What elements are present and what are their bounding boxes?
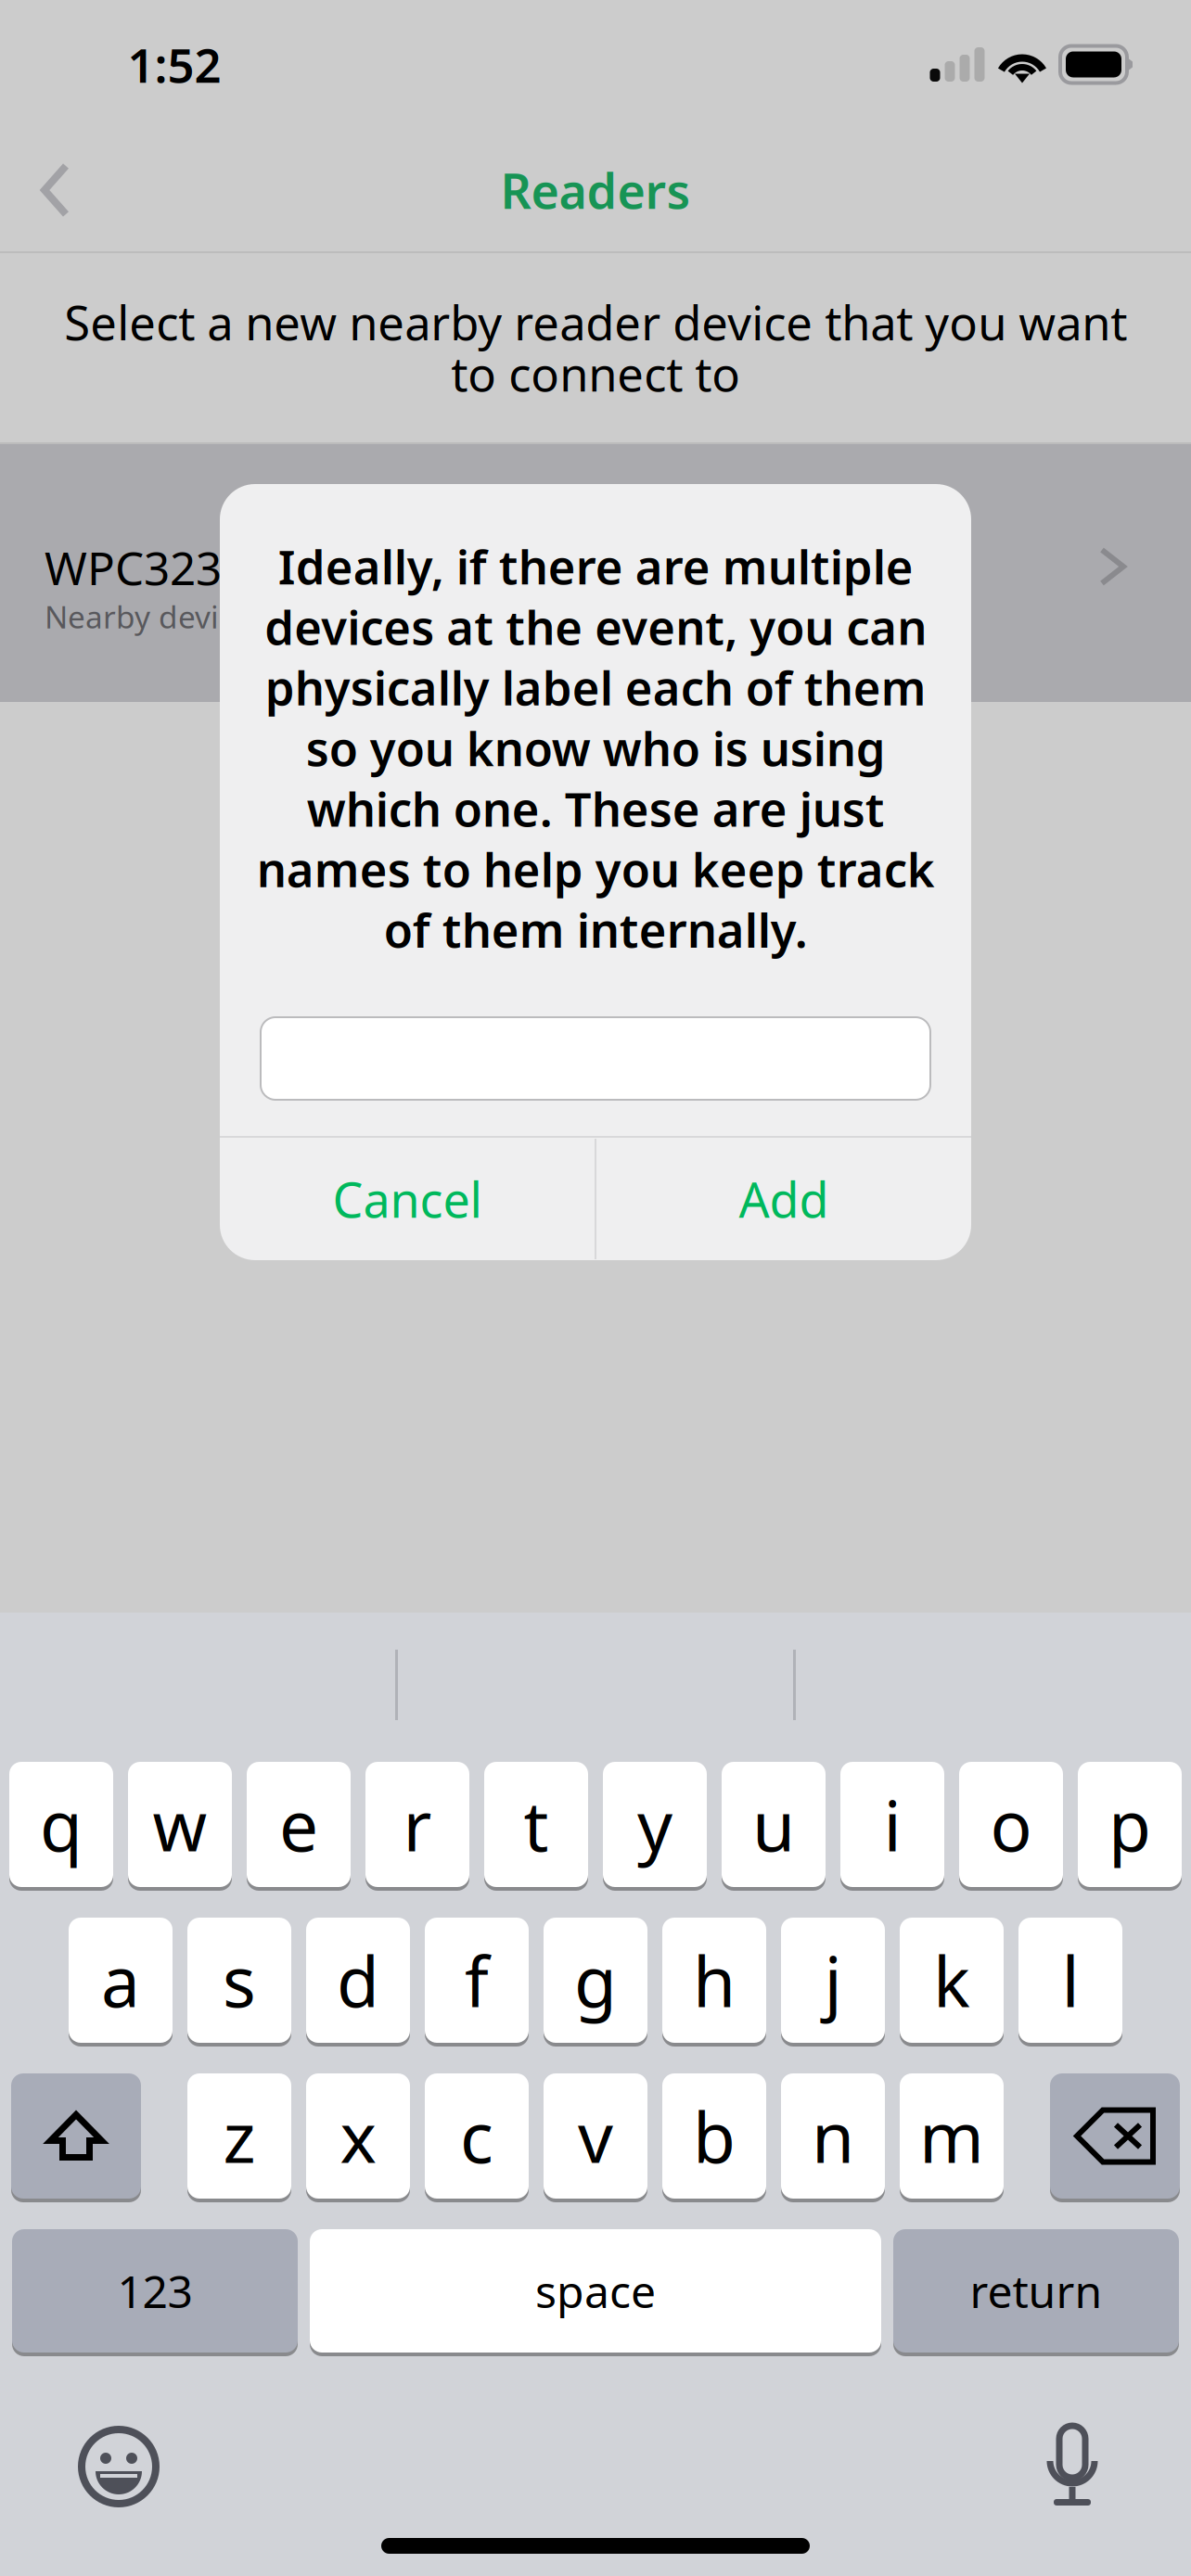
button[interactable]: c bbox=[425, 2072, 529, 2200]
staticText: w bbox=[153, 1778, 207, 1870]
staticText: s bbox=[223, 1934, 256, 2026]
staticText: space bbox=[535, 2261, 656, 2320]
staticText: z bbox=[223, 2090, 256, 2182]
button[interactable]: Cancel bbox=[220, 1138, 595, 1260]
staticText: c bbox=[460, 2090, 493, 2182]
staticText: u bbox=[752, 1778, 795, 1870]
staticText: l bbox=[1062, 1934, 1079, 2026]
button[interactable]: Dictation bbox=[1021, 2416, 1123, 2518]
button[interactable]: b bbox=[662, 2072, 766, 2200]
button[interactable]: k bbox=[900, 1916, 1004, 2045]
staticText: m bbox=[919, 2090, 984, 2182]
staticText: return bbox=[970, 2261, 1102, 2320]
staticText: 1:52 bbox=[128, 33, 221, 96]
staticText: 123 bbox=[117, 2261, 192, 2320]
staticText: b bbox=[693, 2090, 736, 2182]
button[interactable]: t bbox=[484, 1760, 588, 1889]
button[interactable]: z bbox=[187, 2072, 291, 2200]
button[interactable]: Back bbox=[0, 139, 111, 241]
button[interactable]: a bbox=[69, 1916, 173, 2045]
staticText: Cancel bbox=[333, 1167, 482, 1231]
staticText: n bbox=[812, 2090, 854, 2182]
staticText: k bbox=[933, 1934, 970, 2026]
button[interactable]: v bbox=[544, 2072, 647, 2200]
staticText: e bbox=[279, 1778, 318, 1870]
staticText: a bbox=[101, 1934, 140, 2026]
button[interactable]: Add bbox=[596, 1138, 971, 1260]
button[interactable]: x bbox=[306, 2072, 410, 2200]
staticText: Add bbox=[739, 1167, 829, 1231]
button[interactable]: h bbox=[662, 1916, 766, 2045]
button[interactable]: d bbox=[306, 1916, 410, 2045]
button[interactable]: WPC3238174 bbox=[0, 444, 1191, 702]
staticText: p bbox=[1108, 1778, 1151, 1870]
button[interactable]: w bbox=[128, 1760, 232, 1889]
button[interactable]: p bbox=[1078, 1760, 1182, 1889]
button[interactable]: n bbox=[781, 2072, 885, 2200]
staticText: x bbox=[340, 2090, 376, 2182]
button[interactable]: o bbox=[959, 1760, 1063, 1889]
staticText: r bbox=[403, 1778, 432, 1870]
button[interactable]: f bbox=[425, 1916, 529, 2045]
button[interactable]: g bbox=[544, 1916, 647, 2045]
button[interactable]: y bbox=[603, 1760, 707, 1889]
button[interactable]: Shift bbox=[11, 2072, 141, 2200]
staticText: Ideally, if there are multiple devices a… bbox=[256, 535, 935, 961]
staticText: Nearby device bbox=[45, 596, 251, 637]
button[interactable]: return bbox=[893, 2227, 1179, 2354]
staticText: Select a new nearby reader device that y… bbox=[64, 291, 1127, 405]
button[interactable]: i bbox=[840, 1760, 944, 1889]
button[interactable]: u bbox=[722, 1760, 826, 1889]
button[interactable]: j bbox=[781, 1916, 885, 2045]
button[interactable]: m bbox=[900, 2072, 1004, 2200]
staticText: q bbox=[40, 1778, 83, 1870]
staticText: f bbox=[465, 1934, 489, 2026]
staticText: g bbox=[574, 1934, 617, 2026]
button[interactable]: r bbox=[365, 1760, 469, 1889]
button[interactable]: Emoji bbox=[68, 2416, 170, 2518]
staticText: o bbox=[990, 1778, 1032, 1870]
button[interactable]: q bbox=[9, 1760, 113, 1889]
button[interactable]: space bbox=[310, 2227, 881, 2354]
button[interactable]: e bbox=[247, 1760, 351, 1889]
button[interactable]: Delete bbox=[1050, 2072, 1180, 2200]
staticText: Readers bbox=[500, 158, 691, 222]
staticText: y bbox=[637, 1778, 672, 1870]
button[interactable]: l bbox=[1018, 1916, 1122, 2045]
button[interactable]: s bbox=[187, 1916, 291, 2045]
staticText: i bbox=[884, 1778, 901, 1870]
staticText: v bbox=[578, 2090, 613, 2182]
staticText: h bbox=[693, 1934, 736, 2026]
staticText: j bbox=[824, 1934, 842, 2026]
staticText: WPC3238174 bbox=[45, 537, 326, 598]
button[interactable]: 123 bbox=[12, 2227, 298, 2354]
staticText: d bbox=[337, 1934, 379, 2026]
staticText: t bbox=[524, 1778, 549, 1870]
